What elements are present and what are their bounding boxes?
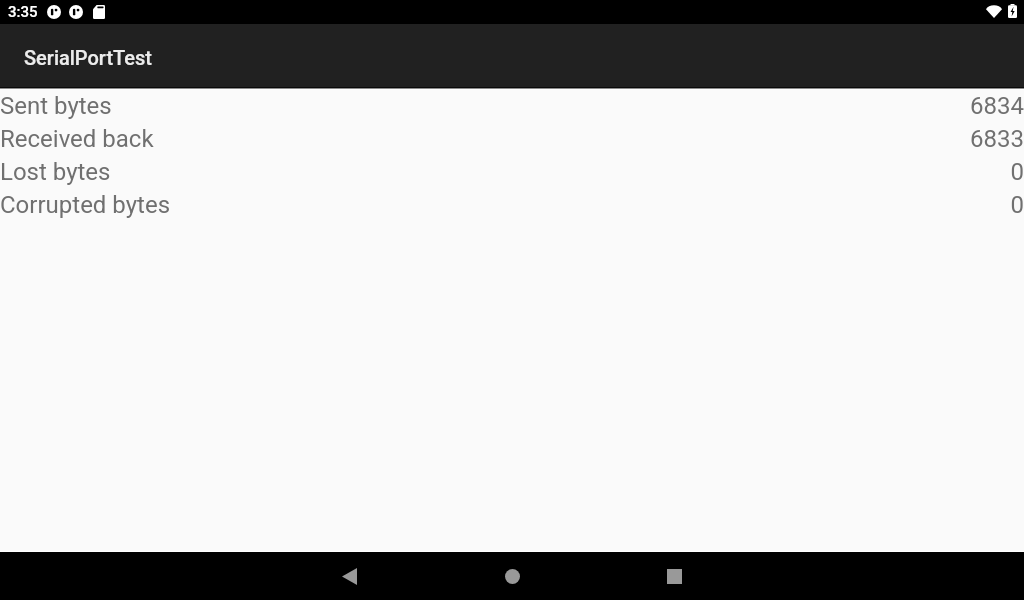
staticText: Sent bytes: [0, 92, 112, 120]
button[interactable]: Recent apps: [612, 552, 736, 600]
button[interactable]: Lost bytes: [0, 155, 1024, 188]
staticText: 3:35: [8, 3, 38, 21]
button[interactable]: Corrupted bytes: [0, 188, 1024, 221]
button[interactable]: Back: [287, 552, 411, 600]
staticText: Corrupted bytes: [0, 191, 171, 219]
staticText: Lost bytes: [0, 158, 111, 186]
staticText: 6833: [970, 125, 1024, 153]
button[interactable]: SerialPortTest: [0, 24, 1024, 87]
staticText: Received back: [0, 125, 154, 153]
button[interactable]: Sent bytes: [0, 89, 1024, 122]
staticText: 0: [1010, 191, 1024, 219]
button[interactable]: Home: [450, 552, 574, 600]
button[interactable]: Received back: [0, 122, 1024, 155]
staticText: 0: [1010, 158, 1024, 186]
staticText: 6834: [970, 92, 1024, 120]
staticText: SerialPortTest: [24, 46, 152, 69]
